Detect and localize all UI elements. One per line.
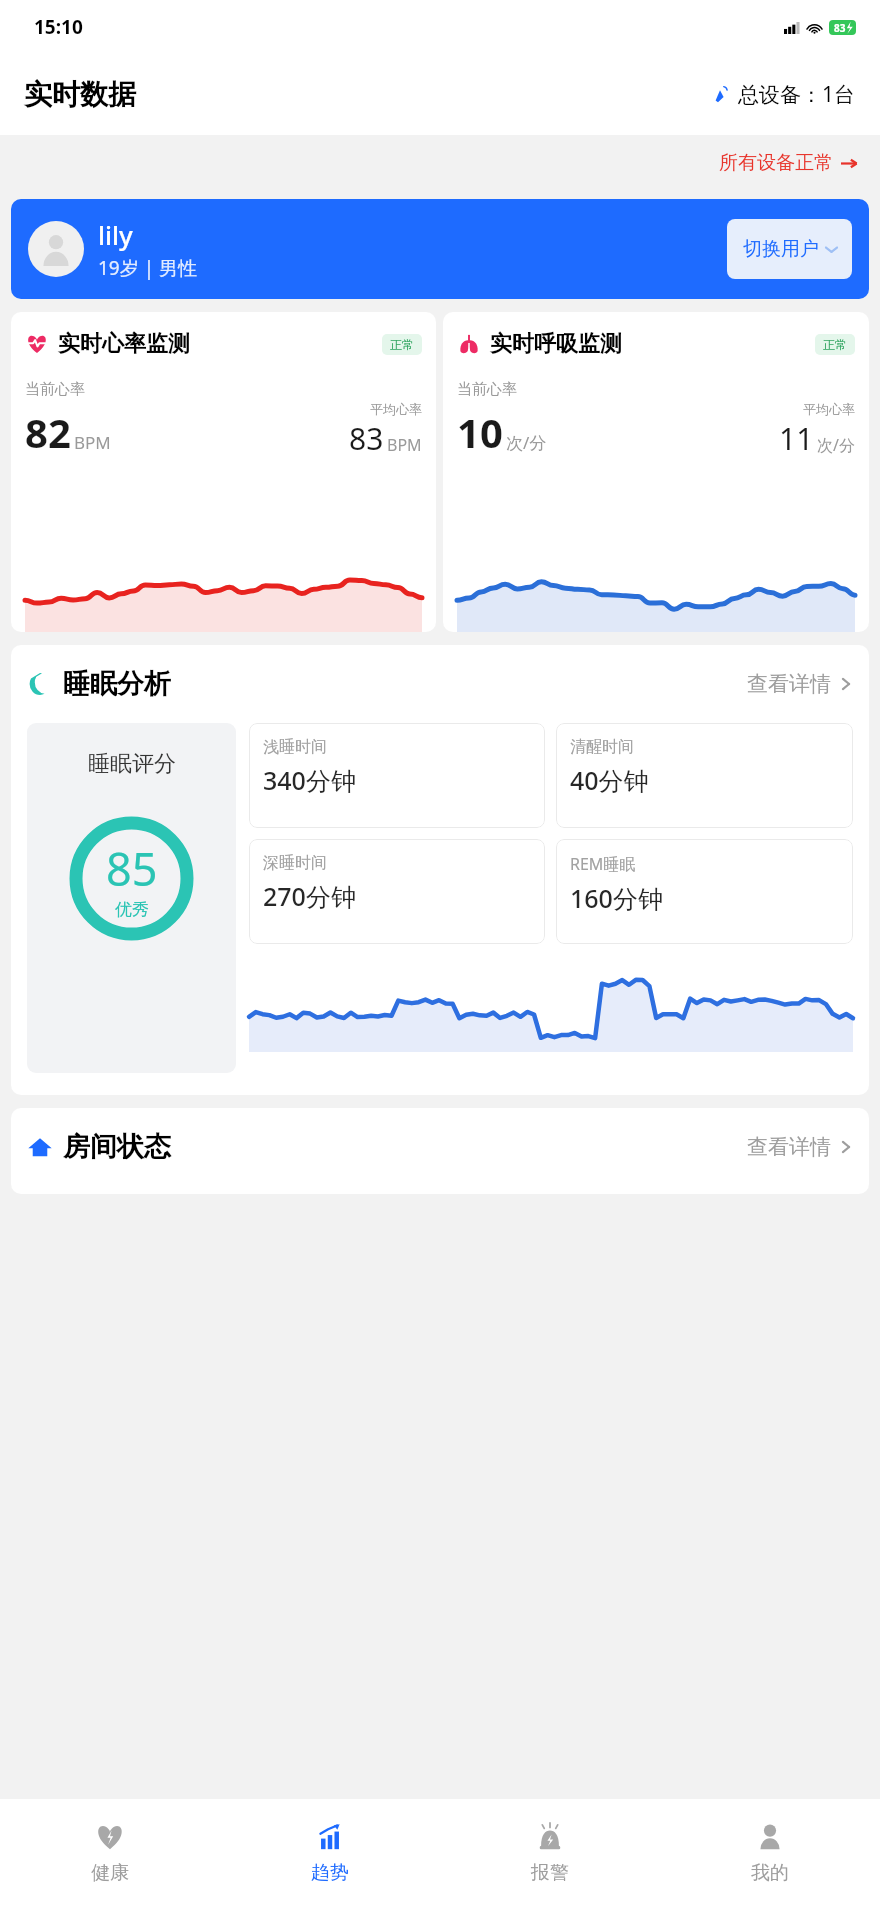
- staticText: 当前心率: [25, 380, 85, 399]
- button[interactable]: 睡眠评分: [27, 723, 236, 1073]
- staticText: 40分钟: [570, 763, 649, 797]
- staticText: 实时心率监测: [58, 330, 190, 358]
- staticText: 优秀: [115, 899, 149, 920]
- staticText: 查看详情: [747, 671, 831, 697]
- staticText: 340分钟: [263, 763, 356, 797]
- button[interactable]: Device: [712, 80, 856, 109]
- staticText: 160分钟: [570, 881, 663, 915]
- staticText: 19岁 | 男性: [98, 255, 198, 281]
- staticText: BPM: [387, 434, 422, 456]
- staticText: 报警: [531, 1861, 569, 1885]
- staticText: 82: [25, 405, 71, 459]
- button[interactable]: 深睡时间: [249, 839, 545, 944]
- staticText: 所有设备正常: [719, 151, 833, 175]
- staticText: 次/分: [817, 434, 855, 456]
- staticText: 平均心率: [803, 401, 855, 417]
- staticText: 清醒时间: [570, 737, 634, 757]
- other: Device: [712, 85, 732, 105]
- staticText: 实时数据: [24, 77, 136, 112]
- button[interactable]: 趋势: [220, 1799, 440, 1907]
- staticText: 85: [106, 838, 158, 899]
- staticText: 浅睡时间: [263, 737, 327, 757]
- staticText: 83: [349, 418, 384, 459]
- button[interactable]: REM睡眠: [556, 839, 853, 944]
- staticText: 睡眠评分: [88, 750, 176, 778]
- button[interactable]: 查看详情: [747, 1134, 853, 1160]
- staticText: 睡眠分析: [63, 667, 171, 701]
- staticText: 平均心率: [370, 401, 422, 417]
- staticText: 实时呼吸监测: [490, 330, 622, 358]
- staticText: 正常: [390, 337, 414, 352]
- staticText: 切换用户: [743, 237, 819, 261]
- staticText: 房间状态: [63, 1130, 171, 1164]
- staticText: 11: [779, 418, 814, 459]
- staticText: 10: [457, 405, 503, 459]
- staticText: 我的: [751, 1861, 789, 1885]
- button[interactable]: 所有设备正常: [719, 151, 858, 175]
- staticText: BPM: [74, 431, 111, 454]
- button[interactable]: lily: [11, 199, 869, 299]
- button[interactable]: 查看详情: [747, 671, 853, 697]
- button[interactable]: 报警: [440, 1799, 660, 1907]
- staticText: 正常: [823, 337, 847, 352]
- staticText: 查看详情: [747, 1134, 831, 1160]
- button[interactable]: 健康: [0, 1799, 220, 1907]
- staticText: 83: [834, 21, 846, 35]
- button[interactable]: 实时心率监测: [11, 312, 436, 632]
- button[interactable]: 实时呼吸监测: [443, 312, 869, 632]
- button[interactable]: 浅睡时间: [249, 723, 545, 828]
- staticText: REM睡眠: [570, 853, 636, 875]
- staticText: 深睡时间: [263, 853, 327, 873]
- staticText: 次/分: [506, 431, 547, 454]
- staticText: 总设备：1台: [738, 80, 856, 109]
- button[interactable]: 切换用户: [727, 219, 852, 279]
- staticText: 趋势: [311, 1861, 349, 1885]
- button[interactable]: 我的: [660, 1799, 880, 1907]
- button[interactable]: 清醒时间: [556, 723, 853, 828]
- staticText: 当前心率: [457, 380, 517, 399]
- staticText: 270分钟: [263, 879, 356, 913]
- staticText: 15:10: [34, 14, 83, 40]
- staticText: 健康: [91, 1861, 129, 1885]
- staticText: lily: [98, 217, 133, 252]
